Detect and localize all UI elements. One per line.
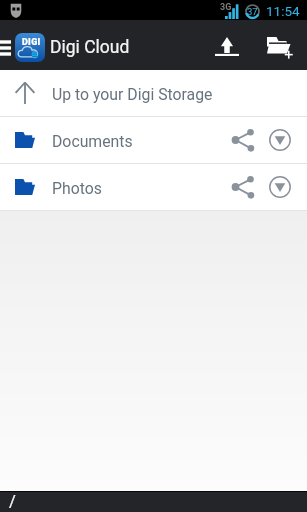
staticText: / [9, 492, 16, 511]
staticText: Digi Cloud [50, 37, 130, 58]
button[interactable]: Upload [197, 20, 256, 70]
button[interactable]: Share [225, 117, 261, 163]
button[interactable]: More options [261, 164, 299, 210]
button[interactable]: New folder [256, 20, 303, 70]
staticText: 37 [247, 6, 258, 17]
staticText: Photos [52, 179, 102, 198]
staticText: Documents [52, 132, 133, 151]
staticText: DIGI [22, 37, 41, 48]
staticText: 11:54 [266, 3, 300, 19]
staticText: 3G [220, 2, 232, 13]
button[interactable]: Photos [0, 164, 307, 210]
button[interactable]: Up to your Digi Storage [0, 70, 307, 116]
button[interactable]: Open navigation drawer [0, 20, 45, 70]
button[interactable]: Documents [0, 117, 307, 163]
button[interactable]: Share [225, 164, 261, 210]
staticText: Up to your Digi Storage [52, 85, 213, 104]
button[interactable]: More options [261, 117, 299, 163]
